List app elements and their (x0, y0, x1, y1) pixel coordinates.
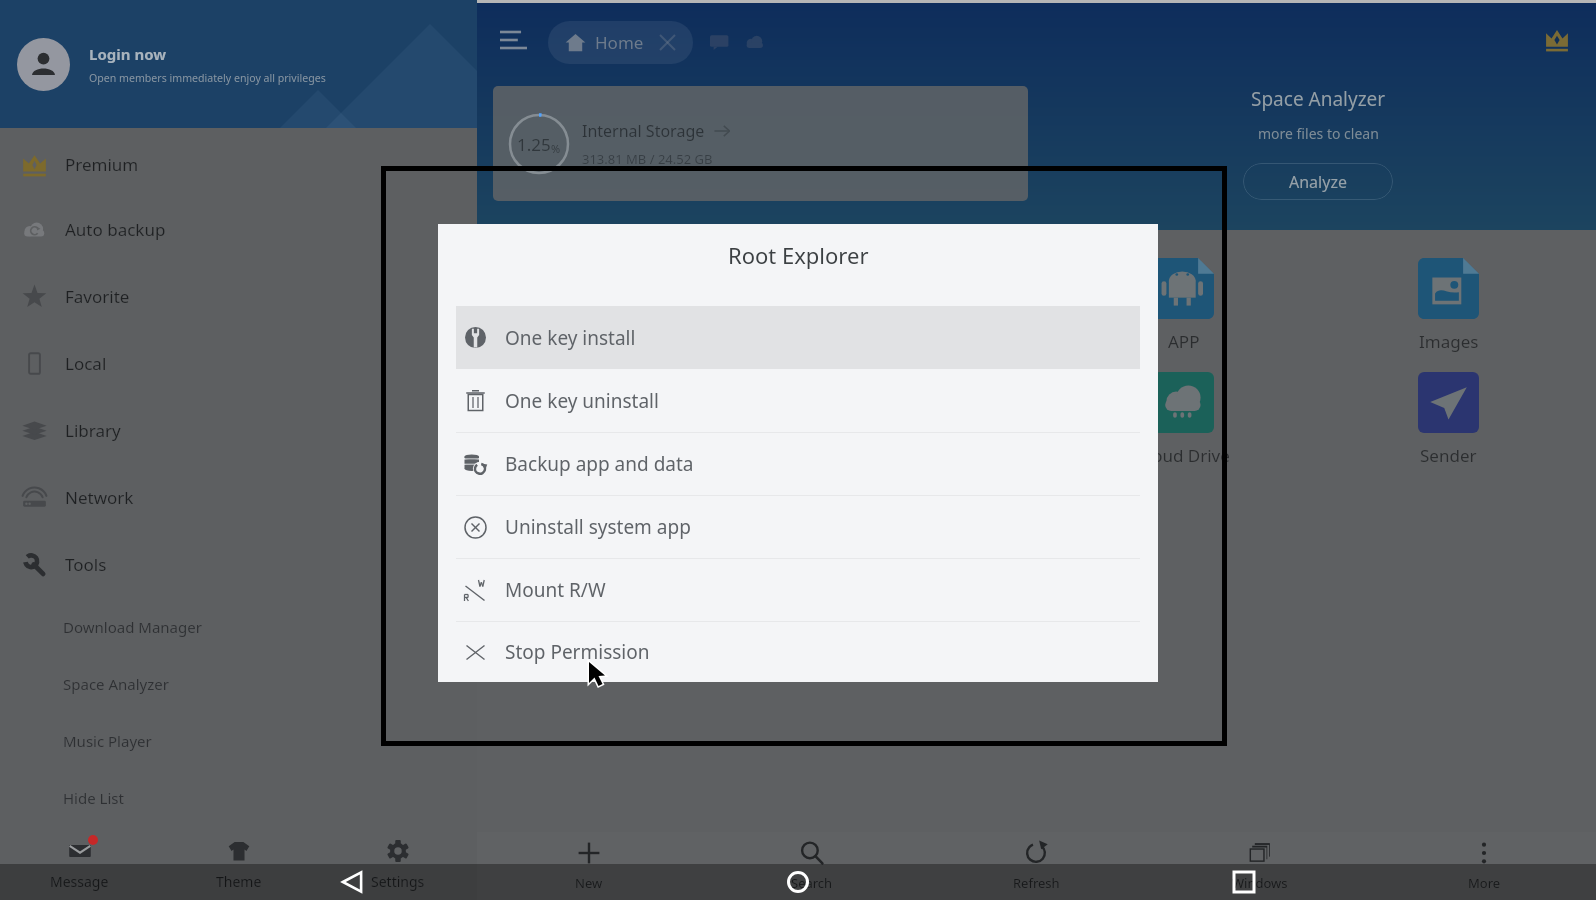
button[interactable]: Library (0, 397, 477, 464)
button[interactable]: Downloads (602, 372, 718, 477)
staticText: Cloud Drive (1137, 444, 1230, 467)
staticText: Mount R/W (505, 577, 606, 603)
button[interactable]: Tools (0, 531, 477, 598)
button[interactable]: Images (1390, 258, 1506, 363)
button[interactable] (17, 38, 70, 91)
button[interactable]: Sender (1390, 372, 1506, 477)
staticText: Uninstall system app (505, 514, 691, 540)
button[interactable]: Search (700, 832, 924, 900)
staticText: more files to clean (1258, 124, 1379, 143)
button[interactable]: Premium (0, 132, 477, 196)
button[interactable]: Home (548, 21, 693, 64)
staticText: Analyze (1289, 171, 1347, 193)
staticText: APP (1168, 330, 1200, 353)
staticText: Backup app and data (505, 451, 694, 477)
button[interactable]: APP (1125, 258, 1241, 363)
staticText: Login now (89, 44, 167, 64)
staticText: Download Manager (63, 617, 202, 637)
button[interactable]: Analyze (1243, 163, 1393, 200)
button[interactable]: Back (337, 867, 367, 897)
staticText: Settings (371, 872, 425, 891)
staticText: Space Analyzer (63, 674, 169, 694)
staticText: 313.81 MB / 24.52 GB (582, 150, 713, 168)
button[interactable]: Hide List (0, 769, 477, 826)
staticText: One key install (505, 325, 636, 351)
button[interactable]: Refresh (924, 832, 1148, 900)
button[interactable]: Music Player (0, 712, 477, 769)
staticText: Internal Storage (582, 120, 705, 142)
button[interactable]: Theme (159, 829, 318, 900)
staticText: 1.25 (517, 133, 551, 156)
staticText: Auto backup (65, 218, 166, 241)
staticText: Images (1419, 330, 1479, 353)
staticText: Local (65, 352, 107, 375)
staticText: Home (595, 31, 644, 54)
staticText: Search (791, 874, 833, 892)
staticText: One key uninstall (505, 388, 659, 414)
button[interactable]: Premium (1541, 25, 1573, 57)
staticText: More (1468, 874, 1501, 892)
button[interactable]: Uninstall system app (456, 496, 1140, 558)
button[interactable]: Space Analyzer (0, 655, 477, 712)
staticText: Theme (216, 872, 262, 891)
staticText: Windows (1232, 874, 1288, 892)
button[interactable]: Message (0, 829, 159, 900)
button[interactable]: Recents (1231, 869, 1257, 895)
staticText: Library (65, 419, 121, 442)
button[interactable]: One key uninstall (456, 369, 1140, 432)
button[interactable]: Stop Permission (456, 622, 1140, 682)
button[interactable]: 1.25 (493, 86, 1028, 201)
button[interactable]: Network (0, 464, 477, 531)
staticText: Message (50, 872, 109, 891)
button[interactable]: Home (785, 869, 811, 895)
staticText: Root Explorer (728, 240, 869, 270)
staticText: Stop Permission (505, 639, 650, 665)
staticText: Downloads (615, 444, 705, 467)
button[interactable]: Backup app and data (456, 433, 1140, 495)
button[interactable]: Documents (862, 258, 978, 363)
staticText: Space Analyzer (1251, 86, 1386, 112)
button[interactable]: Menu (496, 25, 530, 59)
staticText: Tools (65, 553, 107, 576)
button[interactable]: Messages (707, 29, 733, 55)
button[interactable]: Download Manager (0, 598, 477, 655)
button[interactable]: Music (602, 258, 718, 363)
button[interactable]: More (1372, 832, 1596, 900)
staticText: New (575, 874, 603, 892)
staticText: Premium (65, 153, 139, 176)
button[interactable]: Windows (1148, 832, 1372, 900)
button[interactable]: Cloud Drive (1125, 372, 1241, 477)
button[interactable]: One key install (456, 306, 1140, 369)
staticText: Music Player (63, 731, 152, 751)
button[interactable]: Cloud (741, 28, 769, 56)
staticText: % (551, 141, 561, 156)
staticText: Open members immediately enjoy all privi… (89, 71, 326, 85)
staticText: Refresh (1013, 874, 1060, 892)
button[interactable]: Mount R/W (456, 559, 1140, 621)
button[interactable]: Settings (318, 829, 477, 900)
staticText: Network (65, 486, 134, 509)
button[interactable]: New (477, 832, 700, 900)
button[interactable]: Auto backup (0, 196, 477, 263)
staticText: Hide List (63, 788, 124, 808)
staticText: Sender (1420, 444, 1477, 467)
button[interactable]: Favorite (0, 263, 477, 330)
button[interactable]: Local (0, 330, 477, 397)
staticText: Favorite (65, 285, 130, 308)
